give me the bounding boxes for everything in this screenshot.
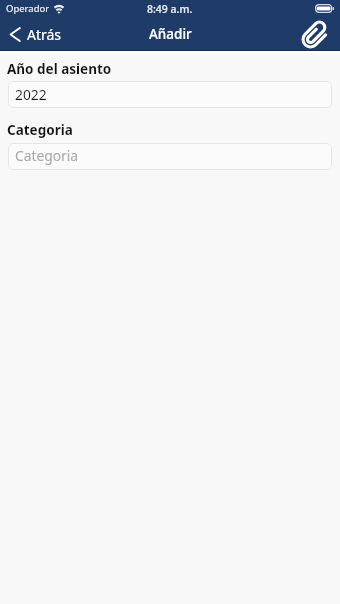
staticText: 2022 — [15, 85, 47, 104]
staticText: 8:49 a.m. — [147, 2, 193, 16]
button[interactable]: Categoria — [8, 143, 332, 170]
button[interactable]: 2022 — [8, 81, 332, 108]
staticText: Categoria — [7, 121, 73, 139]
button[interactable]: Adjuntar archivo — [294, 14, 336, 56]
staticText: Operador — [6, 2, 50, 15]
staticText: Atrás — [27, 25, 62, 44]
button[interactable]: Atrás — [5, 21, 70, 47]
staticText: Año del asiento — [7, 60, 112, 78]
staticText: Categoria — [15, 146, 79, 165]
staticText: Añadir — [149, 25, 192, 43]
